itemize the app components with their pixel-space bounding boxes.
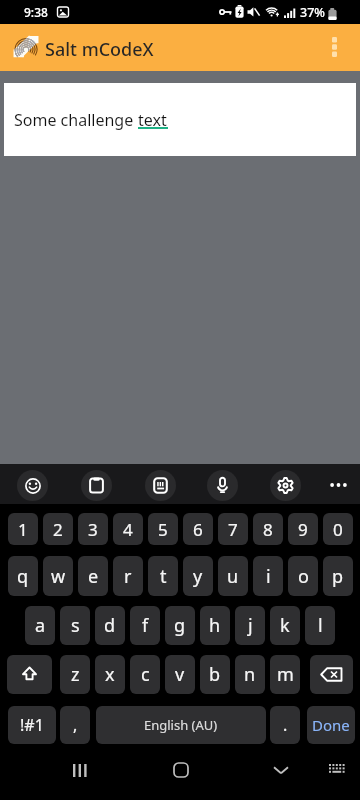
button[interactable]: g <box>165 606 195 645</box>
button[interactable]: x <box>95 655 125 694</box>
button[interactable]: 8 <box>253 513 283 545</box>
staticText: 7 <box>228 518 238 541</box>
staticText: c <box>141 662 150 687</box>
button[interactable]: h <box>200 606 230 645</box>
button[interactable]: l <box>305 606 335 645</box>
staticText: 8 <box>263 518 273 541</box>
staticText: f <box>142 613 149 638</box>
button[interactable]: More keyboard options <box>326 472 350 497</box>
button[interactable]: o <box>288 556 318 596</box>
button[interactable]: Home <box>169 758 193 782</box>
button[interactable]: f <box>130 606 160 645</box>
button[interactable]: 5 <box>148 513 178 545</box>
staticText: e <box>88 564 99 589</box>
button[interactable]: 9 <box>288 513 318 545</box>
button[interactable]: Text stickers <box>145 470 176 501</box>
button[interactable]: 0 <box>323 513 353 545</box>
other: Salt mCodeX logo <box>13 35 39 61</box>
staticText: x <box>105 662 115 687</box>
staticText: Done <box>312 715 350 735</box>
staticText: 5 <box>158 518 168 541</box>
button[interactable]: u <box>218 556 248 596</box>
staticText: Some challenge <box>14 109 138 131</box>
staticText: v <box>175 662 185 687</box>
staticText: 2 <box>53 518 63 541</box>
staticText: m <box>277 662 294 687</box>
staticText: p <box>332 564 344 589</box>
other: Voice input <box>215 477 230 494</box>
button[interactable]: More options <box>322 27 346 67</box>
button[interactable]: 7 <box>218 513 248 545</box>
staticText: t <box>160 564 167 589</box>
button[interactable]: j <box>235 606 265 645</box>
button[interactable]: Voice input <box>207 470 238 501</box>
button[interactable]: 6 <box>183 513 213 545</box>
staticText: 0 <box>333 518 343 541</box>
staticText: text <box>138 109 167 131</box>
button[interactable]: Clipboard <box>81 470 112 501</box>
button[interactable]: e <box>78 556 108 596</box>
button[interactable]: y <box>183 556 213 596</box>
staticText: 9:38 <box>24 4 48 20</box>
button[interactable]: r <box>113 556 143 596</box>
staticText: . <box>283 714 288 736</box>
staticText: Salt mCodeX <box>45 37 154 62</box>
staticText: 37% <box>300 4 325 21</box>
staticText: , <box>73 714 78 736</box>
staticText: English (AU) <box>144 716 218 734</box>
button[interactable]: English (AU) <box>96 706 266 744</box>
button[interactable]: w <box>43 556 73 596</box>
button[interactable]: 1 <box>8 513 38 545</box>
other: Emoji <box>25 478 41 494</box>
button[interactable]: v <box>165 655 195 694</box>
staticText: o <box>298 564 309 589</box>
button[interactable]: i <box>253 556 283 596</box>
staticText: b <box>209 662 221 687</box>
button[interactable]: z <box>60 655 90 694</box>
button[interactable]: Recent apps <box>68 758 92 782</box>
button[interactable]: n <box>235 655 265 694</box>
button[interactable]: c <box>130 655 160 694</box>
button[interactable]: m <box>270 655 300 694</box>
staticText: g <box>174 613 186 638</box>
staticText: k <box>280 613 290 638</box>
staticText: l <box>318 613 323 638</box>
button[interactable]: Done <box>307 706 355 744</box>
staticText: !#1 <box>20 714 44 736</box>
staticText: n <box>244 662 256 687</box>
button[interactable]: a <box>25 606 55 645</box>
button[interactable]: q <box>8 556 38 596</box>
staticText: q <box>17 564 29 589</box>
button[interactable]: s <box>60 606 90 645</box>
other: Keyboard settings <box>277 477 294 494</box>
staticText: i <box>266 564 271 589</box>
staticText: y <box>193 564 203 589</box>
button[interactable]: b <box>200 655 230 694</box>
button[interactable]: 2 <box>43 513 73 545</box>
button[interactable]: Backspace <box>310 655 353 694</box>
other: Backspace <box>320 666 343 683</box>
button[interactable]: . <box>270 706 300 744</box>
button[interactable]: p <box>323 556 353 596</box>
button[interactable]: 3 <box>78 513 108 545</box>
staticText: 4 <box>123 518 133 541</box>
staticText: s <box>71 613 80 638</box>
staticText: 1 <box>18 518 28 541</box>
button[interactable]: d <box>95 606 125 645</box>
staticText: z <box>71 662 80 687</box>
button[interactable]: Keyboard settings <box>270 470 301 501</box>
button[interactable]: t <box>148 556 178 596</box>
staticText: 6 <box>193 518 203 541</box>
button[interactable]: , <box>60 706 90 744</box>
staticText: w <box>51 564 66 589</box>
button[interactable]: !#1 <box>8 706 56 744</box>
button[interactable]: Shift <box>7 655 52 694</box>
button[interactable]: Emoji <box>17 470 48 501</box>
button[interactable]: Some challenge <box>4 83 356 156</box>
staticText: d <box>104 613 116 638</box>
button[interactable]: k <box>270 606 300 645</box>
button[interactable]: Hide keyboard <box>269 758 293 782</box>
button[interactable]: 4 <box>113 513 143 545</box>
staticText: 3 <box>88 518 98 541</box>
button[interactable]: Switch keyboard <box>325 758 349 782</box>
